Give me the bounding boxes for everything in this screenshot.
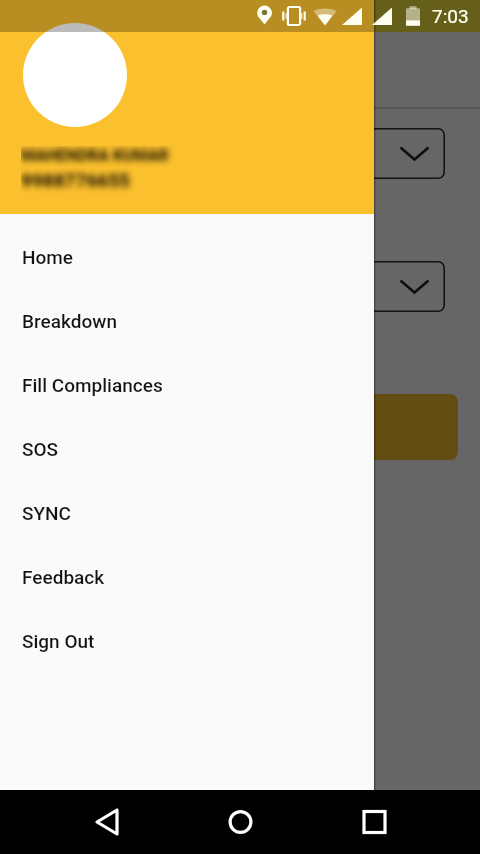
staticText: 9988776655: [21, 169, 131, 191]
button[interactable]: Back: [77, 790, 137, 854]
staticText: Fill Compliances: [22, 374, 163, 396]
button[interactable]: Profile photo: [23, 23, 127, 127]
staticText: SOS: [22, 438, 59, 460]
staticText: SYNC: [22, 502, 71, 524]
button[interactable]: Fill Compliances: [0, 353, 374, 417]
button[interactable]: Sign Out: [0, 609, 374, 673]
button[interactable]: Breakdown: [0, 289, 374, 353]
staticText: Home: [22, 246, 74, 268]
staticText: MAHENDRA KUMAR: [21, 146, 169, 165]
button[interactable]: Feedback: [0, 545, 374, 609]
button[interactable]: Recent apps: [344, 790, 404, 854]
staticText: 7:03: [432, 5, 469, 27]
button[interactable]: Select option: [22, 128, 445, 179]
staticText: Breakdown: [22, 310, 117, 332]
button[interactable]: Home: [210, 790, 270, 854]
button[interactable]: Select option: [22, 261, 445, 312]
button[interactable]: SUBMIT: [22, 394, 458, 460]
button[interactable]: SYNC: [0, 481, 374, 545]
staticText: Feedback: [22, 566, 105, 588]
staticText: Sign Out: [22, 630, 95, 652]
button[interactable]: SOS: [0, 417, 374, 481]
button[interactable]: Home: [0, 225, 374, 289]
